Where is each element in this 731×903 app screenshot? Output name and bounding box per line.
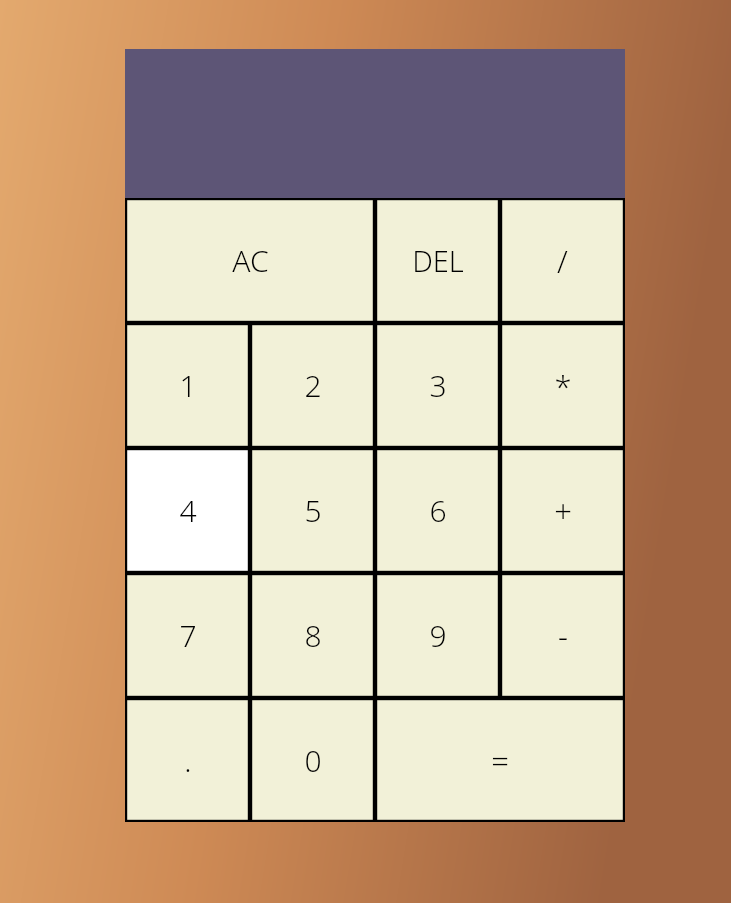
button[interactable]: 3 <box>375 323 500 448</box>
button[interactable]: 9 <box>375 573 500 698</box>
staticText: = <box>491 739 509 781</box>
staticText: 9 <box>429 615 447 656</box>
button[interactable]: Decimal point <box>125 698 250 822</box>
staticText: - <box>558 615 568 657</box>
button[interactable]: Equals <box>375 698 625 822</box>
button[interactable]: 4 <box>125 448 250 573</box>
button[interactable]: 8 <box>250 573 375 698</box>
button[interactable]: 2 <box>250 323 375 448</box>
staticText: 7 <box>179 615 197 656</box>
staticText: * <box>554 365 572 407</box>
button[interactable]: Divide <box>500 198 625 323</box>
button[interactable]: 5 <box>250 448 375 573</box>
button[interactable]: 1 <box>125 323 250 448</box>
staticText: 6 <box>429 490 447 531</box>
staticText: 0 <box>304 740 322 781</box>
button[interactable]: 6 <box>375 448 500 573</box>
staticText: 1 <box>179 365 197 406</box>
button[interactable]: Add <box>500 448 625 573</box>
staticText: AC <box>232 240 269 281</box>
button[interactable]: 0 <box>250 698 375 822</box>
staticText: 3 <box>429 365 447 406</box>
staticText: / <box>557 240 568 282</box>
staticText: 4 <box>179 490 197 531</box>
button[interactable]: DEL <box>375 198 500 323</box>
button[interactable]: Multiply <box>500 323 625 448</box>
staticText: 8 <box>304 615 322 656</box>
staticText: 5 <box>304 490 322 531</box>
staticText: . <box>184 740 192 781</box>
button[interactable]: 7 <box>125 573 250 698</box>
staticText: + <box>554 490 572 532</box>
button[interactable]: AC <box>125 198 375 323</box>
staticText: DEL <box>412 241 464 280</box>
button[interactable]: Subtract <box>500 573 625 698</box>
staticText: 2 <box>304 365 322 406</box>
